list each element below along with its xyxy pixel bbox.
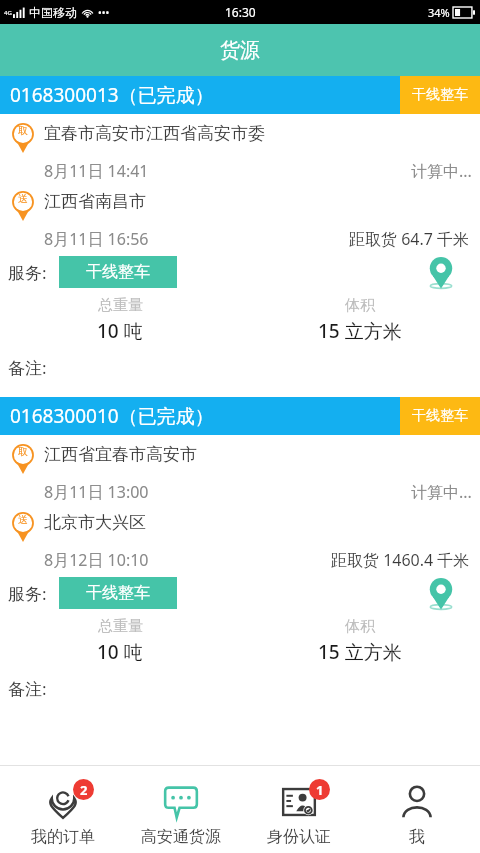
- staticText: 距取货 64.7 千米: [349, 228, 470, 250]
- button[interactable]: 地图: [424, 255, 458, 289]
- staticText: 送: [18, 192, 28, 205]
- staticText: 我: [409, 827, 425, 847]
- staticText: 服务:: [8, 261, 47, 284]
- staticText: 江西省宜春市高安市: [44, 444, 197, 465]
- button[interactable]: 1: [244, 765, 354, 853]
- staticText: 备注:: [8, 356, 47, 379]
- staticText: 江西省南昌市: [44, 191, 146, 212]
- staticText: 北京市大兴区: [44, 512, 146, 533]
- button[interactable]: 高安通货源: [126, 765, 236, 853]
- staticText: 高安通货源: [141, 827, 221, 847]
- staticText: 送: [18, 513, 28, 526]
- staticText: 总重量: [98, 296, 143, 315]
- staticText: 15 立方米: [318, 318, 402, 344]
- button[interactable]: 0168300013（已完成）: [0, 76, 480, 387]
- button[interactable]: 2: [8, 765, 118, 853]
- staticText: 10 吨: [97, 318, 143, 344]
- staticText: 我的订单: [31, 827, 95, 847]
- staticText: 干线整车: [86, 583, 150, 603]
- staticText: 体积: [345, 617, 375, 636]
- staticText: 8月11日 16:56: [44, 228, 149, 250]
- staticText: 16:30: [225, 4, 256, 20]
- staticText: 干线整车: [86, 262, 150, 282]
- staticText: 干线整车: [412, 86, 468, 104]
- staticText: 0168300010（已完成）: [10, 403, 214, 429]
- staticText: 总重量: [98, 617, 143, 636]
- staticText: 1: [316, 781, 324, 799]
- staticText: 身份认证: [267, 827, 331, 847]
- button[interactable]: 地图: [424, 576, 458, 610]
- staticText: 备注:: [8, 677, 47, 700]
- button[interactable]: 0168300010（已完成）: [0, 397, 480, 708]
- staticText: 干线整车: [412, 407, 468, 425]
- staticText: 取: [18, 124, 28, 137]
- staticText: 计算中...: [411, 481, 472, 503]
- staticText: 宜春市高安市江西省高安市委: [44, 123, 265, 144]
- staticText: 8月11日 14:41: [44, 160, 149, 182]
- staticText: 中国移动: [29, 5, 77, 20]
- staticText: 货源: [220, 38, 260, 63]
- staticText: 4G: [4, 9, 12, 17]
- staticText: 34%: [428, 5, 450, 20]
- staticText: 0168300013（已完成）: [10, 82, 214, 108]
- staticText: 服务:: [8, 582, 47, 605]
- staticText: 计算中...: [411, 160, 472, 182]
- button[interactable]: 干线整车: [59, 256, 177, 288]
- staticText: 体积: [345, 296, 375, 315]
- staticText: •••: [98, 6, 110, 20]
- staticText: 10 吨: [97, 639, 143, 665]
- staticText: 8月12日 10:10: [44, 549, 149, 571]
- button[interactable]: 干线整车: [59, 577, 177, 609]
- staticText: 8月11日 13:00: [44, 481, 149, 503]
- button[interactable]: 我: [362, 765, 472, 853]
- staticText: 15 立方米: [318, 639, 402, 665]
- staticText: 距取货 1460.4 千米: [331, 549, 470, 571]
- staticText: 取: [18, 445, 28, 458]
- staticText: 2: [80, 781, 88, 799]
